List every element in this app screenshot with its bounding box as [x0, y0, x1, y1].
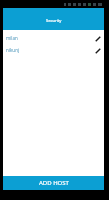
staticText: milan — [6, 35, 90, 41]
button[interactable]: milan — [3, 32, 104, 44]
staticText: nikunj — [6, 47, 90, 53]
button[interactable]: ADD HOST — [3, 176, 104, 190]
button[interactable]: nikunj — [3, 44, 104, 56]
button[interactable]: Edit — [90, 44, 104, 56]
staticText: ADD HOST — [39, 179, 69, 187]
button[interactable]: Edit — [90, 32, 104, 44]
staticText: Security — [46, 18, 62, 23]
